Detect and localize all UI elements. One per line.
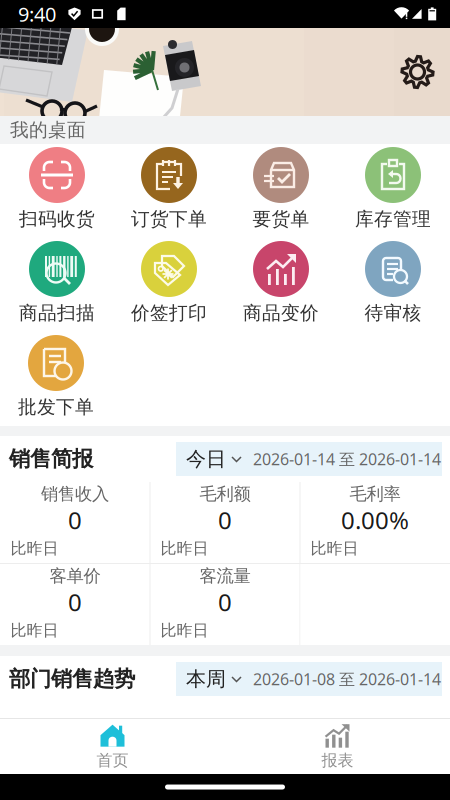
staticText: 销售简报 <box>9 446 93 472</box>
staticText: 今日 <box>186 447 226 471</box>
staticText: 0 <box>68 504 82 536</box>
button[interactable]: 待审核 <box>337 238 449 332</box>
staticText: 比昨日 <box>310 539 358 558</box>
staticText: 扫码收货 <box>19 207 95 230</box>
staticText: 批发下单 <box>18 395 94 418</box>
staticText: 比昨日 <box>10 621 58 640</box>
staticText: 销售收入 <box>41 483 109 505</box>
staticText: 0 <box>218 504 232 536</box>
staticText: 毛利额 <box>199 483 250 505</box>
button[interactable]: 商品扫描 <box>1 238 113 332</box>
staticText: 部门销售趋势 <box>9 666 135 692</box>
staticText: 商品变价 <box>243 301 319 324</box>
staticText: 0 <box>68 586 82 618</box>
staticText: 价签打印 <box>131 301 207 324</box>
staticText: 0 <box>218 586 232 618</box>
staticText: 我的桌面 <box>10 118 86 141</box>
button[interactable]: 订货下单 <box>113 144 225 238</box>
staticText: 商品扫描 <box>19 301 95 324</box>
staticText: 要货单 <box>252 207 309 230</box>
staticText: 比昨日 <box>10 539 58 558</box>
button[interactable]: 首页 <box>0 719 225 774</box>
button[interactable]: 库存管理 <box>337 144 449 238</box>
staticText: 客单价 <box>49 565 100 587</box>
staticText: 报表 <box>321 751 353 770</box>
staticText: 2026-01-14 至 2026-01-14 <box>253 448 441 470</box>
staticText: 9:40 <box>18 1 56 27</box>
staticText: 2026-01-08 至 2026-01-14 <box>253 668 441 690</box>
staticText: 0.00% <box>341 504 409 536</box>
staticText: 订货下单 <box>131 207 207 230</box>
staticText: 毛利率 <box>349 483 400 505</box>
button[interactable]: 批发下单 <box>0 332 112 426</box>
staticText: 比昨日 <box>160 621 208 640</box>
staticText: 比昨日 <box>160 539 208 558</box>
button[interactable]: 商品变价 <box>225 238 337 332</box>
staticText: 首页 <box>96 751 128 770</box>
staticText: 本周 <box>186 667 226 691</box>
button[interactable]: 今日 <box>176 442 252 476</box>
staticText: 客流量 <box>199 565 250 587</box>
button[interactable]: 扫码收货 <box>1 144 113 238</box>
button[interactable]: Settings <box>391 46 443 98</box>
staticText: 库存管理 <box>355 207 431 230</box>
button[interactable]: 本周 <box>176 662 252 696</box>
button[interactable]: 报表 <box>225 719 450 774</box>
button[interactable]: 要货单 <box>225 144 337 238</box>
staticText: 待审核 <box>364 301 421 324</box>
button[interactable]: 价签打印 <box>113 238 225 332</box>
